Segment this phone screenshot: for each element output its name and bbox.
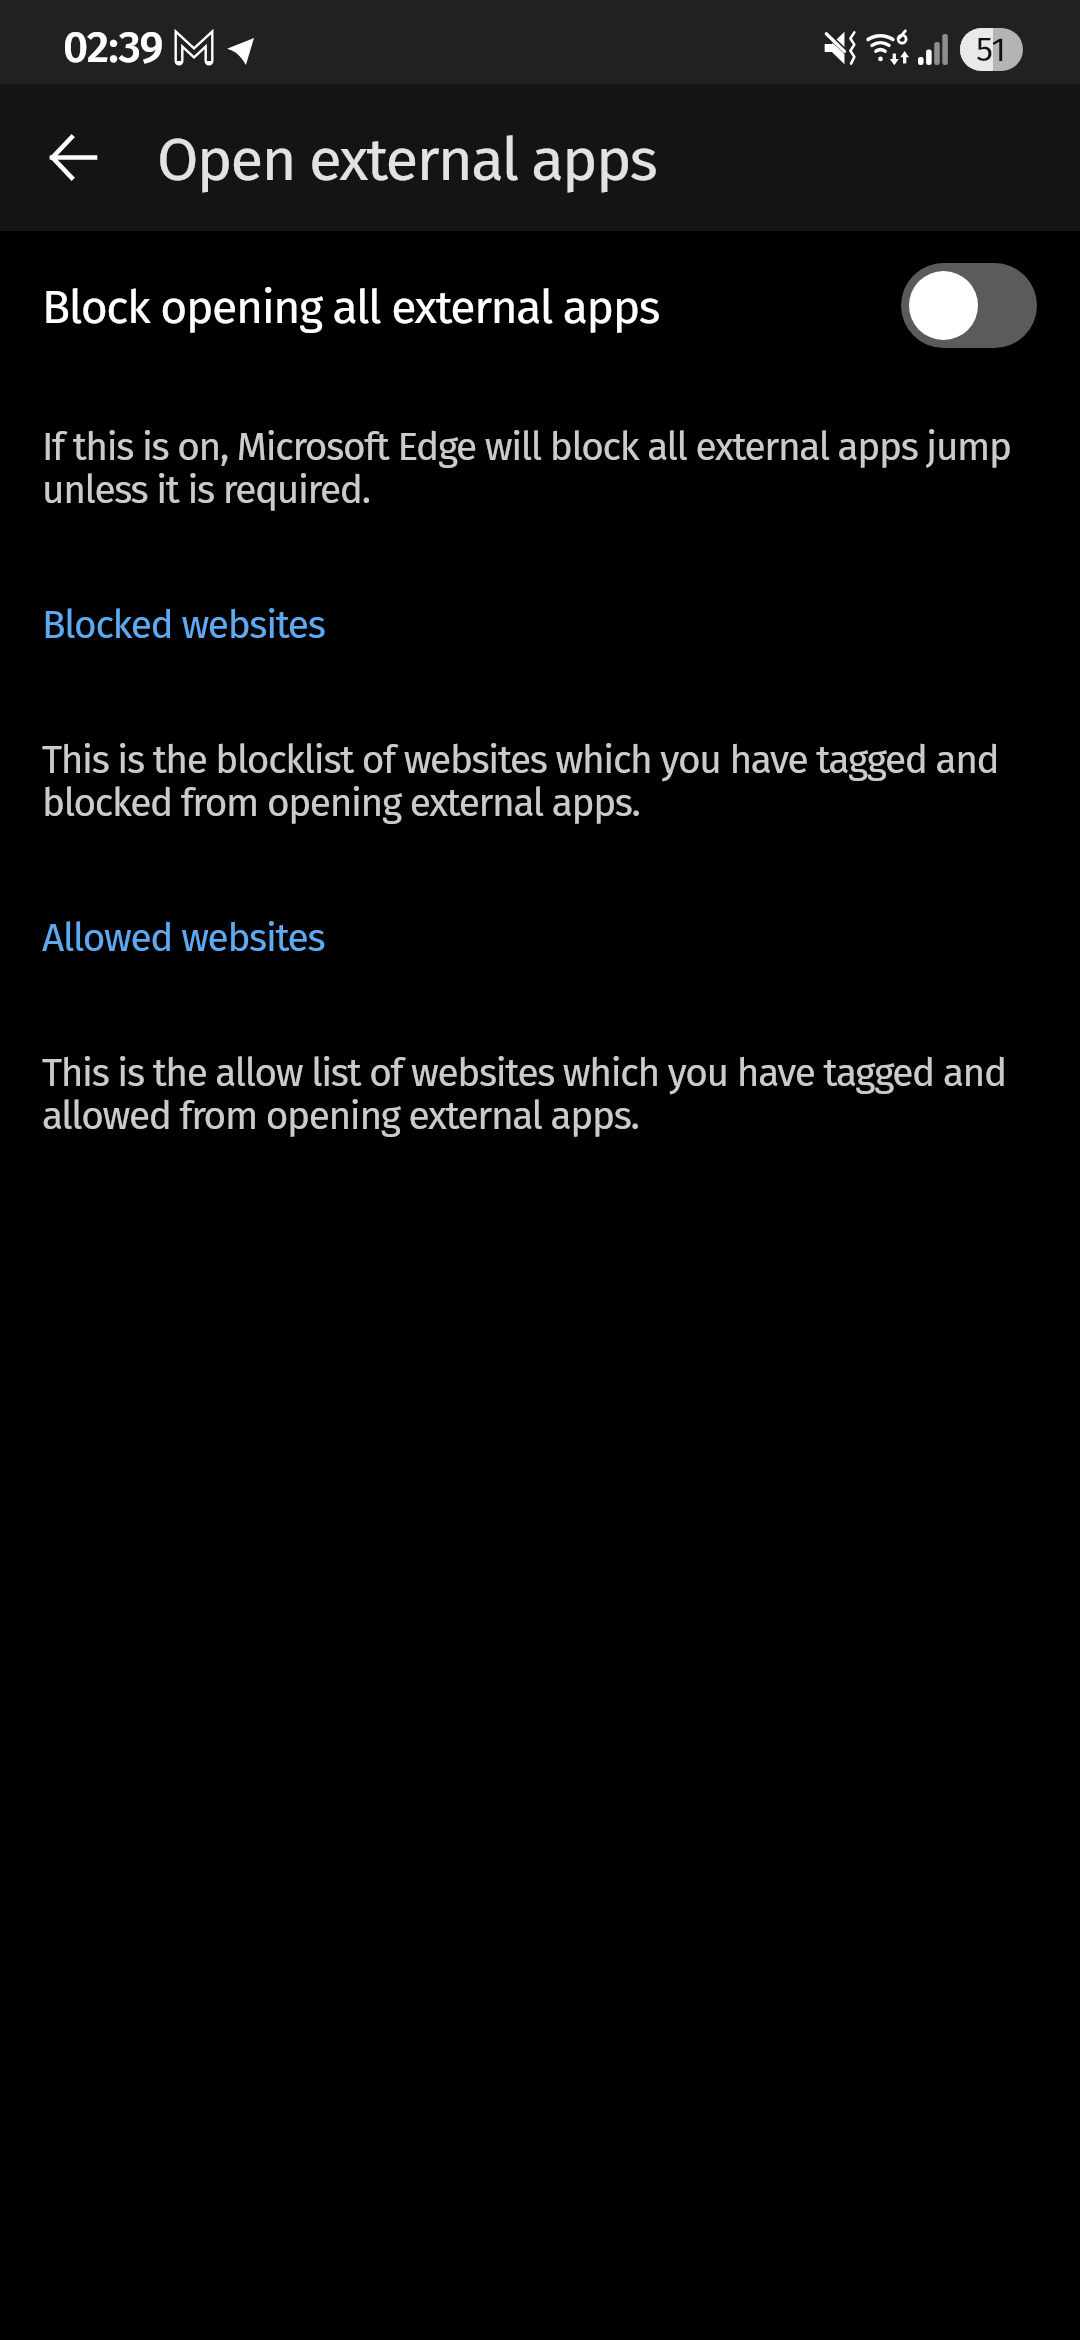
staticText: Open external apps bbox=[157, 124, 657, 196]
button[interactable]: Blocked websites bbox=[0, 580, 1080, 660]
staticText: This is the allow list of websites which… bbox=[42, 1050, 1022, 1139]
button[interactable]: Allowed websites bbox=[0, 893, 1080, 973]
button[interactable]: Block opening all external apps bbox=[0, 243, 1080, 367]
button[interactable]: Back bbox=[29, 113, 117, 201]
staticText: Allowed websites bbox=[42, 915, 325, 962]
button[interactable]: Block opening all external apps bbox=[901, 263, 1037, 348]
staticText: 51 bbox=[976, 29, 1007, 70]
staticText: Blocked websites bbox=[42, 602, 325, 649]
staticText: If this is on, Microsoft Edge will block… bbox=[42, 424, 1022, 513]
staticText: 02:39 bbox=[63, 21, 163, 74]
staticText: This is the blocklist of websites which … bbox=[42, 737, 1022, 826]
staticText: Block opening all external apps bbox=[42, 280, 659, 336]
